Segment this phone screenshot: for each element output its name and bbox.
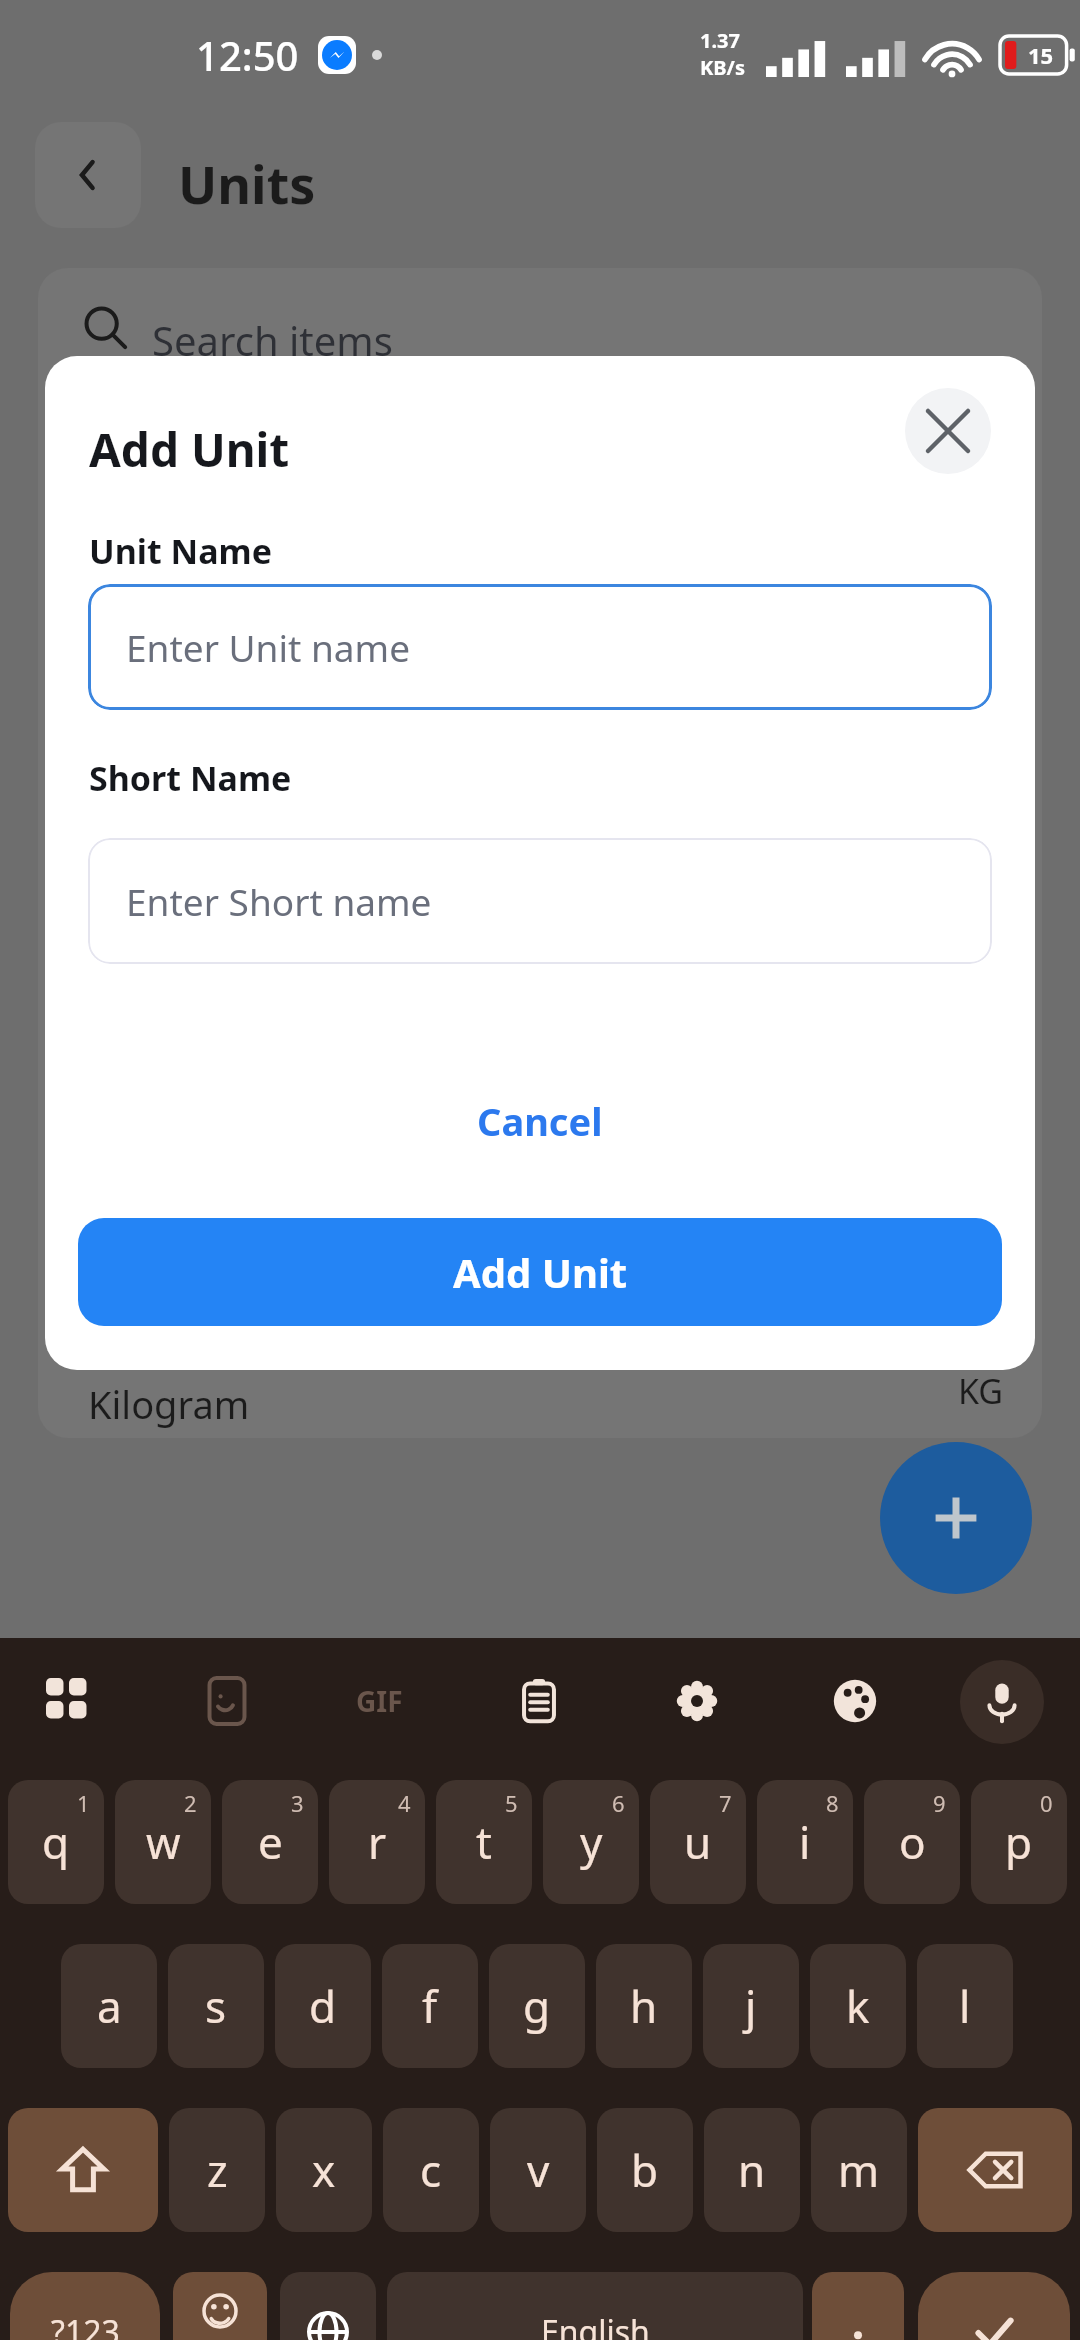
staticText: p	[1005, 1812, 1033, 1872]
staticText: z	[207, 2140, 228, 2200]
staticText: Add Unit	[89, 418, 290, 481]
staticText: y	[580, 1812, 603, 1872]
staticText: e	[258, 1812, 283, 1872]
staticText: 0	[1040, 1788, 1053, 1818]
staticText: KG	[958, 1368, 1004, 1414]
staticText: q	[42, 1812, 70, 1872]
staticText: r	[368, 1812, 387, 1872]
staticText: 4	[398, 1788, 411, 1818]
staticText: s	[205, 1976, 227, 2036]
button[interactable]: Back	[35, 122, 141, 228]
staticText: 9	[933, 1788, 946, 1818]
staticText: English	[541, 2310, 650, 2340]
button[interactable]: Clipboard	[508, 1670, 570, 1732]
staticText: Add Unit	[453, 1245, 628, 1299]
staticText: Enter Short name	[126, 876, 432, 926]
staticText: j	[745, 1976, 757, 2036]
staticText: Units	[178, 148, 316, 219]
button[interactable]: Enter Short name	[88, 838, 992, 964]
button[interactable]: p	[971, 1780, 1067, 1904]
staticText: ?123	[51, 2310, 120, 2340]
staticText: t	[476, 1812, 492, 1872]
staticText: 1.37	[700, 27, 740, 54]
staticText: GIF	[356, 1682, 403, 1720]
button[interactable]: b	[597, 2108, 693, 2232]
staticText: n	[738, 2140, 766, 2200]
staticText: Cancel	[477, 1095, 603, 1147]
button[interactable]: x	[276, 2108, 372, 2232]
button[interactable]: Enter Unit name	[88, 584, 992, 710]
button[interactable]: Enter	[918, 2272, 1070, 2340]
button[interactable]: h	[596, 1944, 692, 2068]
button[interactable]: m	[811, 2108, 907, 2232]
button[interactable]: GIF	[348, 1670, 410, 1732]
staticText: KB/s	[700, 54, 745, 81]
button[interactable]: Period	[812, 2272, 904, 2340]
staticText: d	[309, 1976, 337, 2036]
button[interactable]: r	[329, 1780, 425, 1904]
staticText: c	[420, 2140, 442, 2200]
button[interactable]: Add Unit	[78, 1218, 1002, 1326]
button[interactable]: Stickers	[196, 1670, 258, 1732]
button[interactable]: Apps	[38, 1670, 100, 1732]
staticText: k	[846, 1976, 870, 2036]
staticText: Search items	[152, 313, 393, 367]
button[interactable]: v	[490, 2108, 586, 2232]
button[interactable]: j	[703, 1944, 799, 2068]
button[interactable]: Add	[880, 1442, 1032, 1594]
button[interactable]: o	[864, 1780, 960, 1904]
button[interactable]: d	[275, 1944, 371, 2068]
button[interactable]: Change language	[280, 2272, 376, 2340]
button[interactable]: l	[917, 1944, 1013, 2068]
staticText: 5	[505, 1788, 518, 1818]
staticText: w	[146, 1812, 181, 1872]
button[interactable]: t	[436, 1780, 532, 1904]
button[interactable]: n	[704, 2108, 800, 2232]
staticText: 2	[184, 1788, 197, 1818]
staticText: v	[527, 2140, 550, 2200]
button[interactable]: Voice input	[960, 1660, 1044, 1744]
button[interactable]: Theme	[824, 1670, 886, 1732]
staticText: Kilogram	[88, 1378, 250, 1430]
button[interactable]: y	[543, 1780, 639, 1904]
staticText: g	[523, 1976, 551, 2036]
staticText: 7	[719, 1788, 732, 1818]
button[interactable]: e	[222, 1780, 318, 1904]
staticText: x	[312, 2140, 336, 2200]
button[interactable]: f	[382, 1944, 478, 2068]
staticText: a	[97, 1976, 122, 2036]
button[interactable]: Emoji	[173, 2272, 267, 2340]
staticText: 12:50	[196, 28, 299, 82]
staticText: b	[631, 2140, 659, 2200]
button[interactable]: k	[810, 1944, 906, 2068]
button[interactable]: g	[489, 1944, 585, 2068]
staticText: l	[959, 1976, 971, 2036]
button[interactable]: q	[8, 1780, 104, 1904]
button[interactable]: u	[650, 1780, 746, 1904]
button[interactable]: English	[387, 2272, 803, 2340]
staticText: m	[838, 2140, 880, 2200]
button[interactable]: Backspace	[918, 2108, 1072, 2232]
button[interactable]: s	[168, 1944, 264, 2068]
button[interactable]: a	[61, 1944, 157, 2068]
button[interactable]: Shift	[8, 2108, 158, 2232]
staticText: 3	[291, 1788, 304, 1818]
staticText: u	[684, 1812, 712, 1872]
staticText: h	[630, 1976, 658, 2036]
staticText: o	[899, 1812, 926, 1872]
button[interactable]: c	[383, 2108, 479, 2232]
button[interactable]: Close	[905, 388, 991, 474]
staticText: 1	[77, 1788, 90, 1818]
staticText: Enter Unit name	[126, 622, 411, 672]
button[interactable]: w	[115, 1780, 211, 1904]
staticText: 6	[612, 1788, 625, 1818]
button[interactable]: i	[757, 1780, 853, 1904]
button[interactable]: Cancel	[45, 1086, 1035, 1156]
staticText: 8	[826, 1788, 839, 1818]
button[interactable]: ?123	[10, 2272, 160, 2340]
button[interactable]: Settings	[666, 1670, 728, 1732]
staticText: Unit Name	[89, 528, 273, 574]
button[interactable]: z	[169, 2108, 265, 2232]
staticText: i	[799, 1812, 811, 1872]
